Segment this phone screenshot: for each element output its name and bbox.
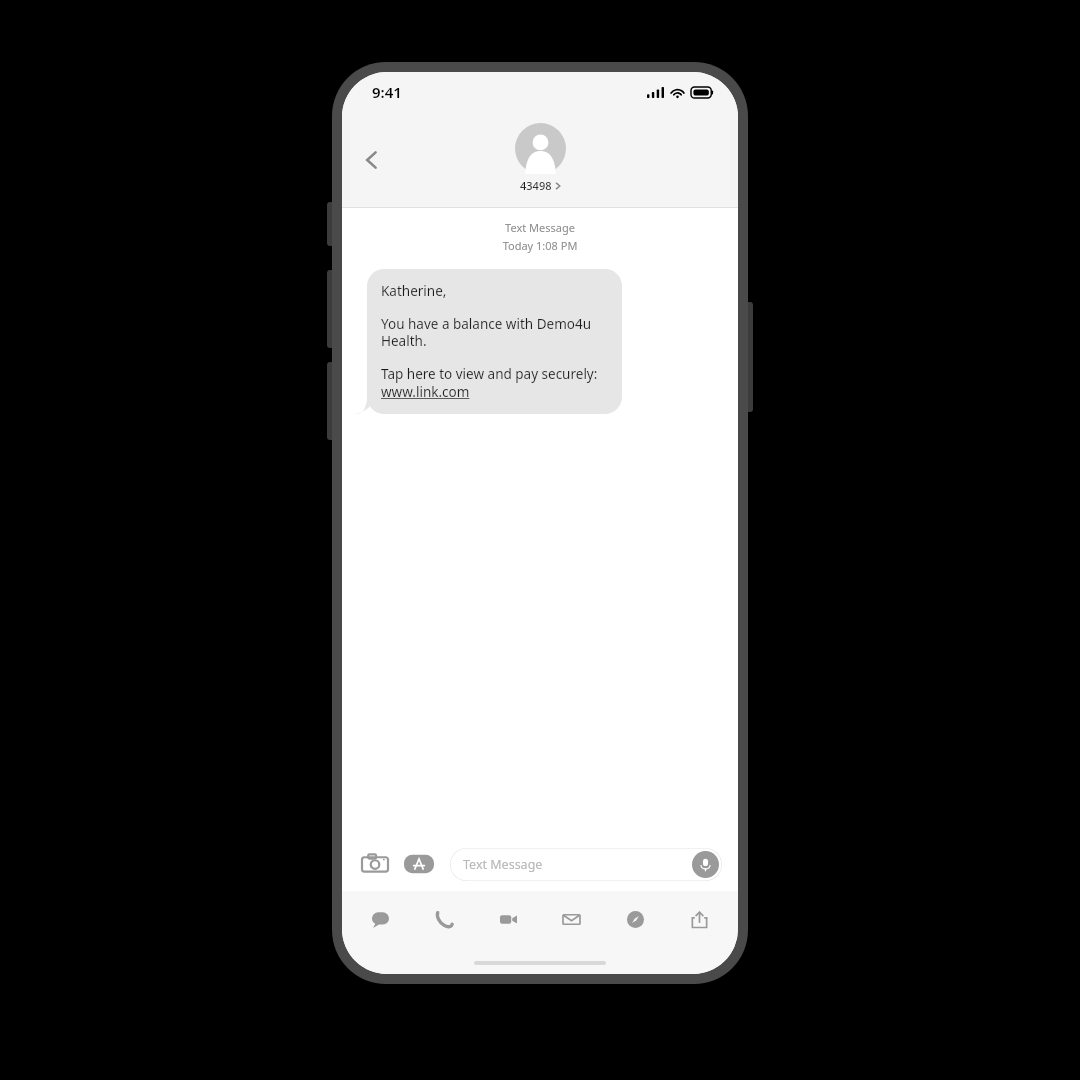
button[interactable]: Camera [358, 847, 392, 881]
button[interactable]: Mail [551, 899, 592, 940]
button[interactable]: Apps [402, 847, 436, 881]
staticText: Tap here to view and pay securely: [381, 365, 598, 383]
button[interactable]: Katherine, [367, 269, 622, 414]
staticText: Text Message [463, 856, 543, 873]
staticText: 43498 [520, 178, 552, 193]
staticText: Text Message [342, 220, 738, 235]
staticText: 9:41 [372, 82, 402, 102]
button[interactable]: Share [679, 899, 720, 940]
button[interactable]: 43498 [515, 123, 566, 193]
button[interactable]: Safari [615, 899, 656, 940]
button[interactable]: Messages [360, 899, 401, 940]
staticText: Katherine, [381, 282, 447, 300]
button[interactable]: www.link.com [381, 383, 470, 401]
button[interactable]: Dictate [692, 851, 719, 878]
button[interactable]: Back [350, 138, 394, 182]
staticText: Today 1:08 PM [342, 238, 738, 253]
staticText: You have a balance with Demo4u Health. [381, 315, 608, 350]
button[interactable]: Text Message [450, 848, 722, 881]
button[interactable]: Phone [424, 899, 465, 940]
button[interactable]: FaceTime [488, 899, 529, 940]
